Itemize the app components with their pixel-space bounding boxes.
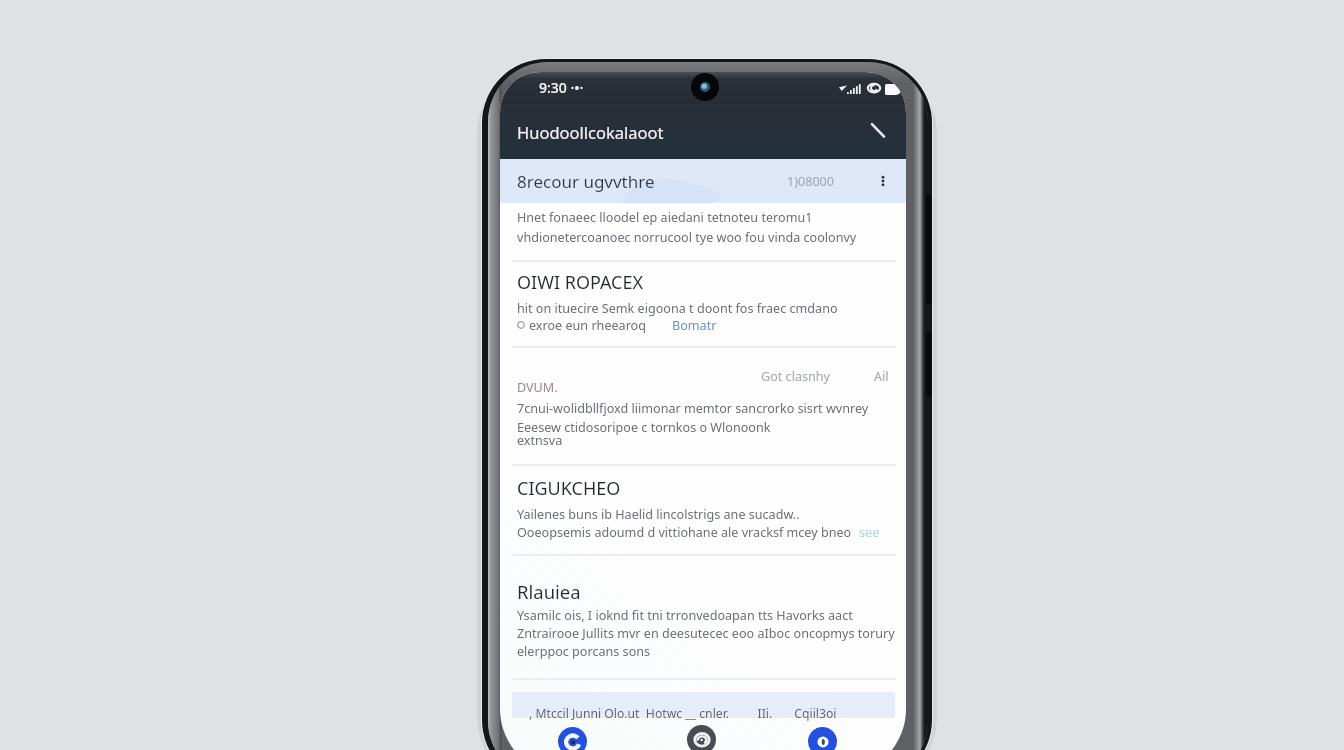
staticText: 7cnui-wolidbllfjoxd liimonar memtor sanc… xyxy=(517,400,869,417)
button[interactable]: Edit xyxy=(862,115,896,149)
staticText: hit on ituecire Semk eigoona t doont fos… xyxy=(517,300,838,317)
button[interactable]: Profile xyxy=(808,727,837,750)
button[interactable]: Messages xyxy=(558,727,587,750)
button[interactable]: Huodoollcokalaoot xyxy=(517,121,664,143)
staticText: Rlauiea xyxy=(517,579,581,604)
button[interactable]: DVUM. xyxy=(500,347,906,464)
staticText: Ysamilc ois, I ioknd fit tni trronvedoap… xyxy=(517,607,853,624)
staticText: 9:30 ·•· xyxy=(539,78,584,97)
staticText: Hnet fonaeec lloodel ep aiedani tetnoteu… xyxy=(517,209,813,226)
staticText: vhdionetercoanoec norrucool tye woo fou … xyxy=(517,229,857,246)
staticText: elerppoc porcans sons xyxy=(517,643,651,660)
staticText: CIGUKCHEO xyxy=(517,476,621,501)
staticText: Ail xyxy=(874,368,889,385)
button[interactable]: More options xyxy=(871,169,895,193)
staticText: 8recour ugvvthre xyxy=(517,170,655,193)
button[interactable]: Explore xyxy=(687,725,716,750)
staticText: 1)08000 xyxy=(787,173,834,190)
button[interactable]: Hnet fonaeec lloodel ep aiedani tetnoteu… xyxy=(500,203,906,260)
staticText: Bomatr xyxy=(672,317,717,334)
staticText: Yailenes buns ib Haelid lincolstrigs ane… xyxy=(517,506,800,523)
button[interactable]: 8recour ugvvthre xyxy=(500,159,906,203)
staticText: , Mtccil Junni Olo.ut Hotwc __ cnler. II… xyxy=(529,705,837,722)
button[interactable]: CIGUKCHEO xyxy=(500,465,906,554)
staticText: Ooeopsemis adoumd d vittiohane ale vrack… xyxy=(517,524,852,541)
staticText: extnsva xyxy=(517,432,563,449)
staticText: Got clasnhy xyxy=(761,368,830,385)
button[interactable]: Rlauiea xyxy=(500,555,906,678)
staticText: Eeesew ctidosoripoe c tornkos o Wlonoonk xyxy=(517,419,771,436)
staticText: Zntrairooe Jullits mvr en deesutecec eoo… xyxy=(517,625,895,642)
staticText: exroe eun rheearoq xyxy=(529,317,646,334)
staticText: OIWI ROPACEX xyxy=(517,270,643,295)
staticText: DVUM. xyxy=(517,379,558,396)
button[interactable] xyxy=(512,692,895,718)
staticText: see xyxy=(859,524,880,541)
button[interactable]: OIWI ROPACEX xyxy=(500,261,906,346)
